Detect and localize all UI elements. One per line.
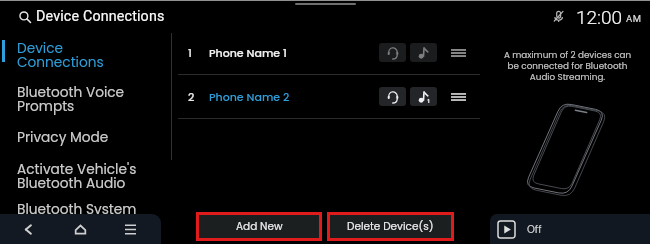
button[interactable]: Bluetooth System bbox=[0, 199, 168, 225]
staticText: 2 bbox=[188, 89, 195, 104]
button[interactable]: Reorder bbox=[448, 43, 468, 63]
button[interactable]: Search bbox=[19, 9, 31, 25]
staticText: A maximum of 2 devices can be connected … bbox=[487, 49, 648, 83]
button[interactable]: 1 bbox=[178, 31, 480, 74]
button[interactable]: Activate Vehicle's Bluetooth Audio bbox=[0, 159, 168, 199]
button[interactable]: Privacy Mode bbox=[0, 127, 168, 153]
button[interactable]: 2 bbox=[178, 75, 480, 118]
staticText: Bluetooth Voice Prompts bbox=[17, 83, 125, 116]
button[interactable]: Call audio bbox=[379, 87, 406, 106]
staticText: Phone Name 2 bbox=[209, 89, 290, 104]
staticText: AM bbox=[626, 13, 642, 24]
button[interactable]: Add New bbox=[199, 215, 319, 238]
button[interactable]: Play bbox=[490, 214, 650, 244]
staticText: Device Connections bbox=[36, 8, 165, 25]
button[interactable]: Device Connections bbox=[0, 38, 168, 78]
staticText: Phone Name 1 bbox=[209, 45, 287, 60]
staticText: Privacy Mode bbox=[17, 128, 109, 147]
button[interactable]: Back bbox=[16, 217, 40, 241]
staticText: Device Connections bbox=[17, 39, 104, 72]
button[interactable]: Recent apps bbox=[118, 217, 142, 241]
staticText: 1 bbox=[188, 45, 192, 60]
button[interactable]: Media audio bbox=[410, 87, 437, 106]
button[interactable]: Call audio bbox=[379, 43, 406, 62]
button[interactable]: Play bbox=[497, 220, 516, 239]
button[interactable]: Delete Device(s) bbox=[330, 215, 451, 238]
staticText: Bluetooth System bbox=[17, 200, 137, 219]
button[interactable]: Home bbox=[68, 217, 92, 241]
button[interactable]: Reorder bbox=[448, 87, 468, 107]
button[interactable]: Bluetooth Voice Prompts bbox=[0, 82, 168, 122]
staticText: Off bbox=[527, 222, 542, 236]
staticText: Add New bbox=[236, 219, 283, 234]
staticText: 12:00 bbox=[576, 6, 623, 28]
staticText: Activate Vehicle's Bluetooth Audio bbox=[17, 160, 137, 193]
staticText: Delete Device(s) bbox=[347, 219, 434, 234]
button[interactable]: Media audio bbox=[410, 43, 437, 62]
